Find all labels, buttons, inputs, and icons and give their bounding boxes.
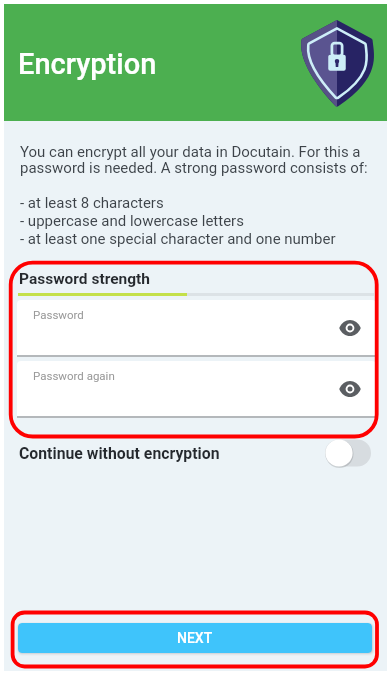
staticText: Continue without encryption [19,444,220,463]
button[interactable]: NEXT [18,623,372,653]
staticText: NEXT [177,630,213,646]
staticText: Encryption [18,47,157,81]
button[interactable]: Password [17,300,376,357]
other: Show password [338,377,362,401]
button[interactable]: Continue without encryption toggle [325,438,373,468]
button[interactable]: Continue without encryption [4,437,387,469]
button[interactable]: Password again [17,361,376,418]
staticText: Password again [33,369,115,382]
staticText: Password strength [19,270,151,288]
staticText: You can encrypt all your data in Docutai… [20,143,376,177]
staticText: Password [33,308,84,321]
other: Show password [338,316,362,340]
staticText: - at least 8 characters - uppercase and … [20,194,380,248]
